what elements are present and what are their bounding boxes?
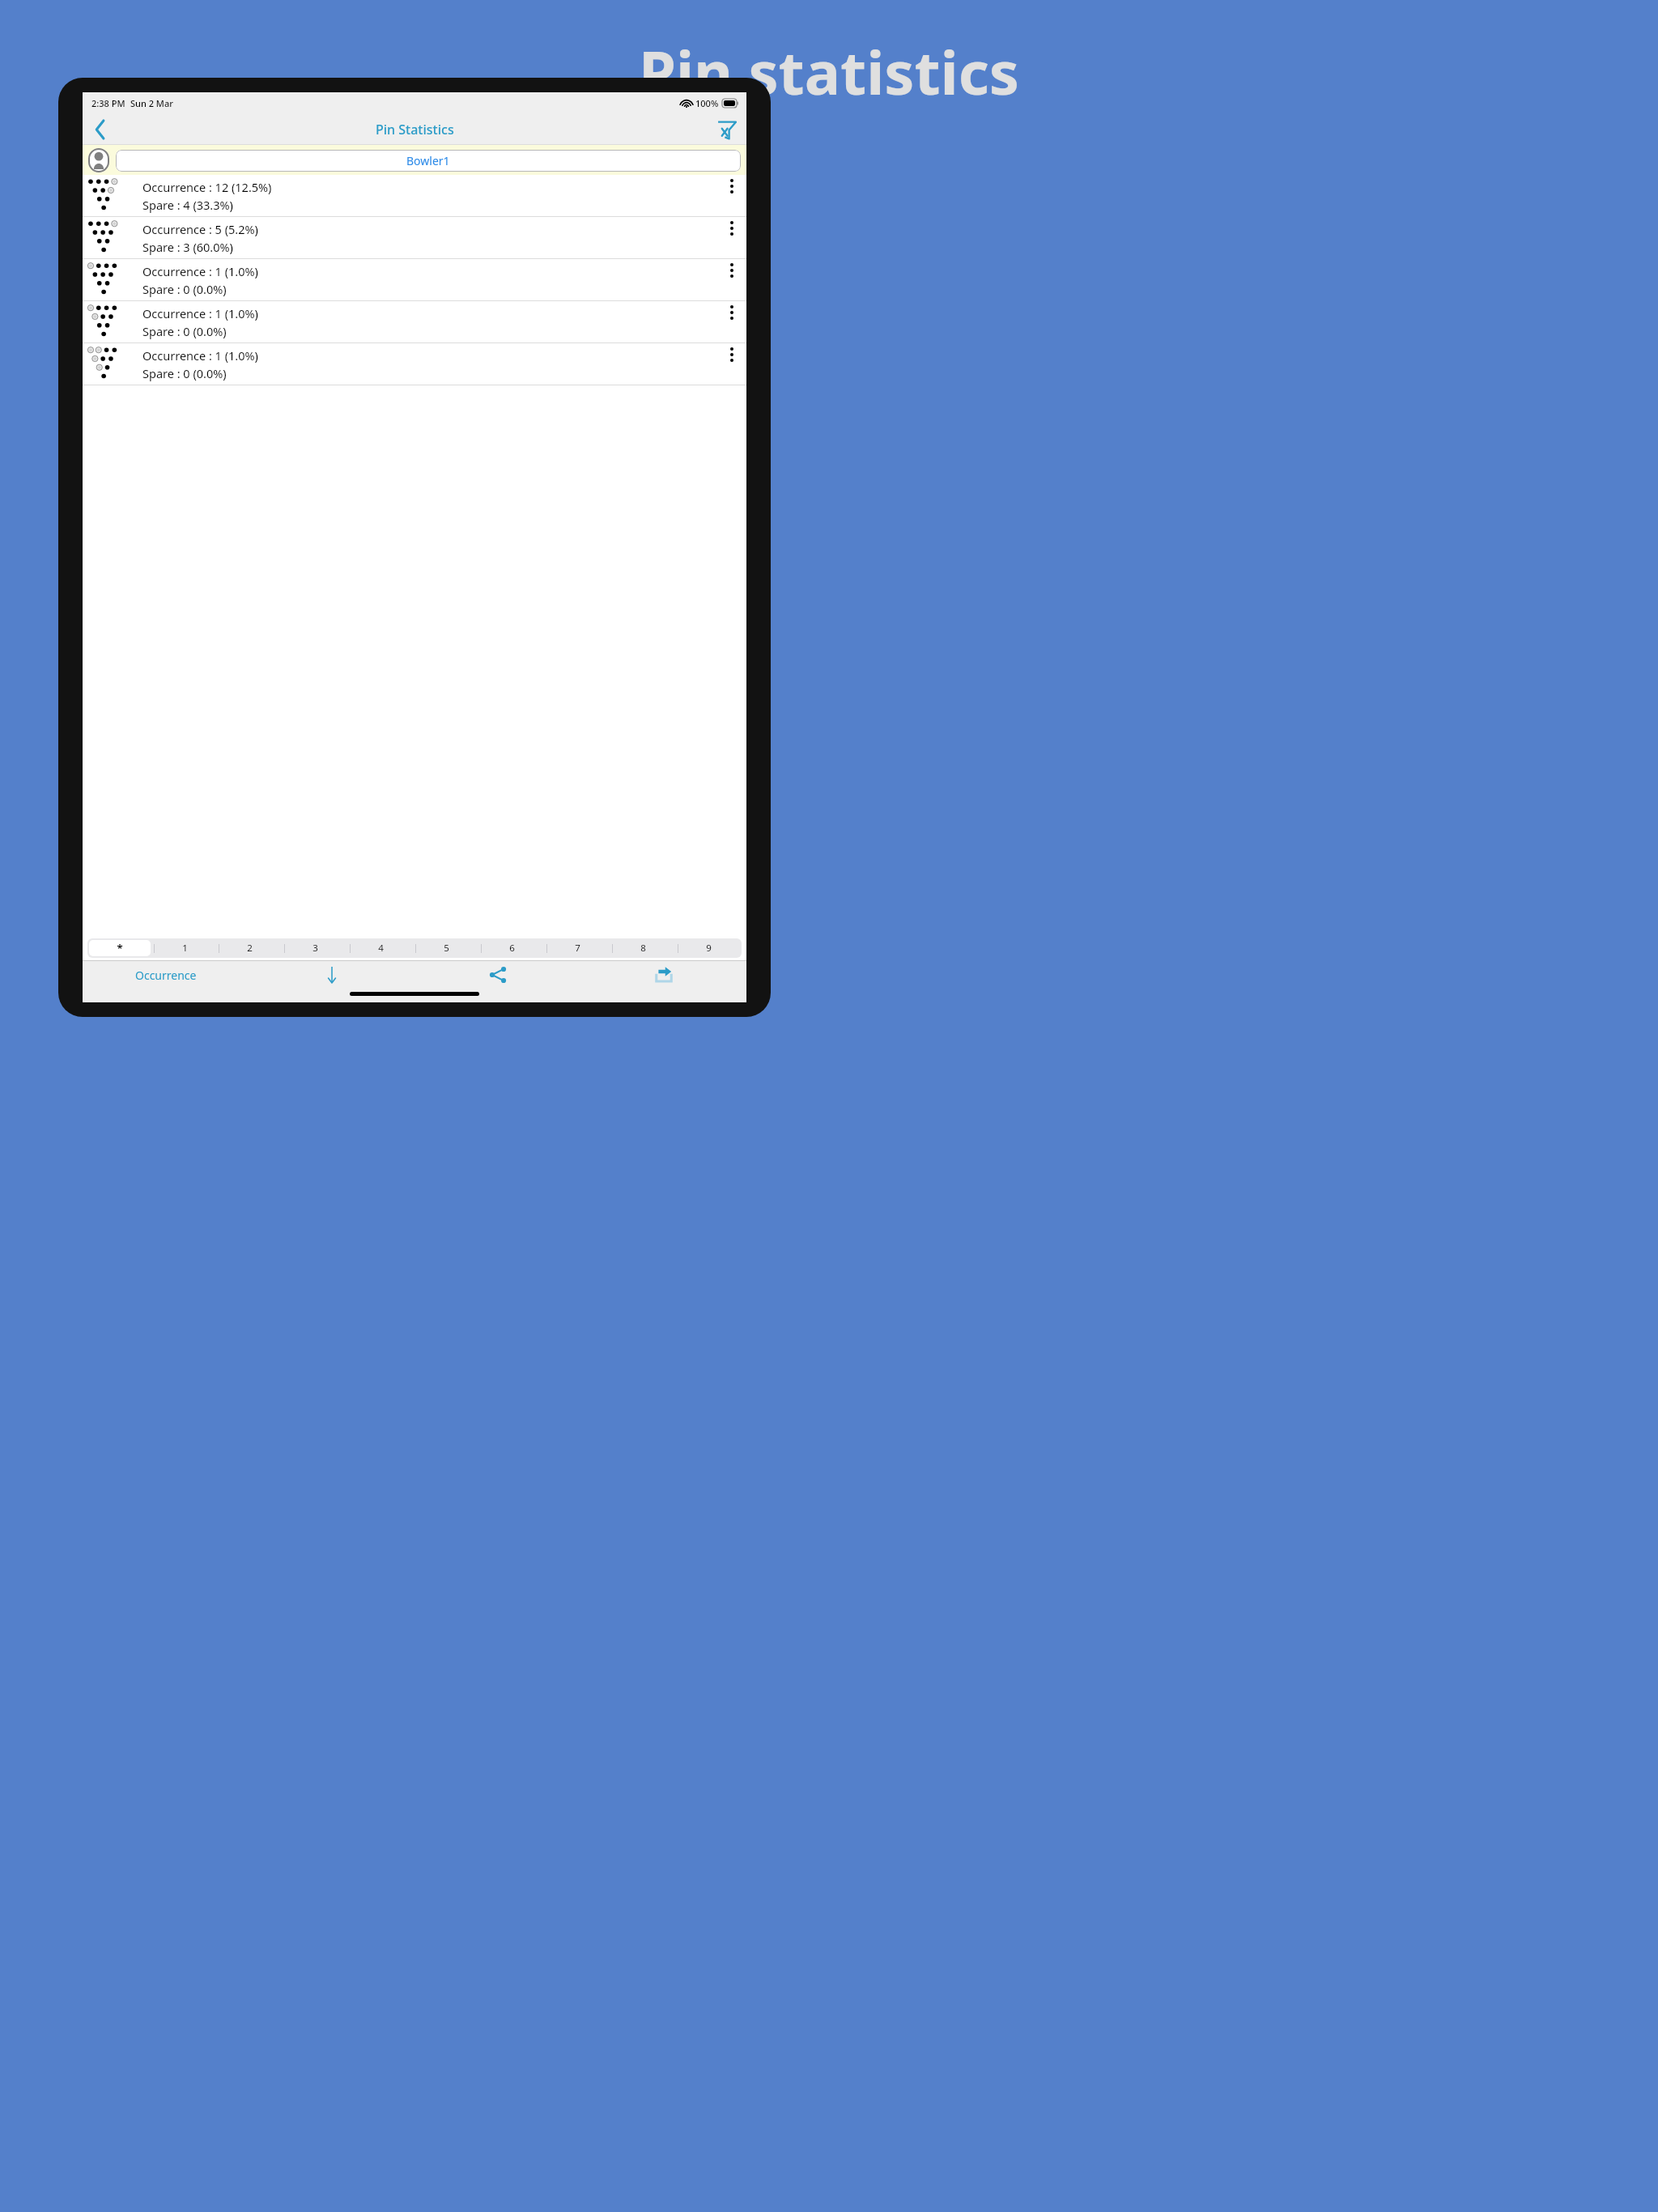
button[interactable]: More options <box>717 343 746 385</box>
button[interactable]: Sort descending <box>249 960 414 989</box>
button[interactable]: More options <box>717 301 746 343</box>
staticText: 1 <box>182 942 188 955</box>
button[interactable]: Occurrence : 1 (1.0%) <box>83 259 746 301</box>
staticText: 9 <box>706 942 712 955</box>
staticText: 4 <box>378 942 384 955</box>
staticText: Spare : 4 (33.3%) <box>142 197 233 213</box>
staticText: Occurrence : 12 (12.5%) <box>142 179 272 195</box>
staticText: Occurrence : 1 (1.0%) <box>142 347 258 364</box>
button[interactable]: More options <box>717 217 746 259</box>
button[interactable]: 8 <box>612 940 674 956</box>
button[interactable]: 9 <box>678 940 740 956</box>
button[interactable]: 6 <box>481 940 543 956</box>
staticText: Spare : 0 (0.0%) <box>142 323 227 339</box>
button[interactable]: 3 <box>284 940 346 956</box>
button[interactable]: Export <box>580 960 746 989</box>
staticText: 7 <box>575 942 580 955</box>
staticText: Spare : 3 (60.0%) <box>142 239 233 255</box>
button[interactable]: 7 <box>546 940 609 956</box>
button[interactable]: Share <box>414 960 580 989</box>
staticText: 6 <box>509 942 515 955</box>
staticText: 3 <box>312 942 318 955</box>
staticText: Bowler1 <box>406 153 450 168</box>
staticText: 5 <box>444 942 449 955</box>
staticText: 2 <box>247 942 253 955</box>
staticText: Spare : 0 (0.0%) <box>142 281 227 297</box>
staticText: * <box>117 941 123 955</box>
staticText: Occurrence <box>135 968 197 983</box>
button[interactable]: * <box>89 940 151 956</box>
staticText: Occurrence : 1 (1.0%) <box>142 305 258 321</box>
staticText: 100% <box>695 97 719 109</box>
button[interactable]: 4 <box>350 940 412 956</box>
staticText: Pin Statistics <box>376 121 454 138</box>
button[interactable]: Back <box>83 113 118 145</box>
staticText: Occurrence : 1 (1.0%) <box>142 263 258 279</box>
button[interactable]: Occurrence <box>83 960 249 989</box>
staticText: Sun 2 Mar <box>130 97 173 109</box>
button[interactable]: Occurrence : 5 (5.2%) <box>83 217 746 259</box>
button[interactable]: 5 <box>415 940 478 956</box>
staticText: Pin statistics <box>639 31 1019 113</box>
button[interactable]: Bowler1 <box>83 145 746 175</box>
button[interactable]: More options <box>717 175 746 217</box>
button[interactable]: 2 <box>219 940 281 956</box>
button[interactable]: Occurrence : 1 (1.0%) <box>83 343 746 385</box>
staticText: 2:38 PM <box>91 97 125 109</box>
button[interactable]: Occurrence : 12 (12.5%) <box>83 175 746 217</box>
button[interactable]: 1 <box>154 940 215 956</box>
button[interactable]: Clear filter <box>708 113 746 145</box>
staticText: Spare : 0 (0.0%) <box>142 365 227 381</box>
button[interactable]: Occurrence : 1 (1.0%) <box>83 301 746 343</box>
staticText: 8 <box>640 942 646 955</box>
staticText: Occurrence : 5 (5.2%) <box>142 221 258 237</box>
button[interactable]: More options <box>717 259 746 301</box>
